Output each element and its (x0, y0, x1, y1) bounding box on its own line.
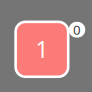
button[interactable]: 1 (14, 20, 69, 78)
button[interactable]: 0 (69, 22, 85, 38)
staticText: 0 (73, 21, 81, 38)
staticText: 1 (35, 34, 48, 64)
